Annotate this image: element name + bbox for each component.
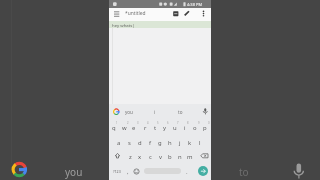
button[interactable]: y [160, 120, 170, 135]
staticText: 0 [208, 121, 210, 125]
staticText: a [117, 139, 121, 147]
button[interactable]: q [109, 120, 119, 135]
staticText: j [179, 139, 181, 147]
button[interactable]: k [185, 135, 195, 150]
staticText: x [138, 153, 142, 161]
staticText: z [129, 153, 132, 161]
staticText: 4:38 PM [187, 2, 203, 7]
button[interactable]: x [135, 149, 145, 164]
staticText: . [186, 168, 188, 176]
staticText: 1 [116, 121, 118, 125]
button[interactable]: c [145, 149, 155, 164]
button[interactable]: i [180, 120, 190, 135]
staticText: r [144, 124, 147, 132]
button[interactable]: s [124, 135, 134, 150]
button[interactable]: r [140, 120, 150, 135]
button[interactable] [198, 166, 208, 176]
staticText: , [127, 168, 129, 176]
staticText: you [125, 109, 133, 115]
staticText: o [193, 124, 197, 132]
staticText: 5 [157, 121, 159, 125]
staticText: k [188, 139, 192, 147]
button[interactable] [132, 164, 141, 179]
button[interactable]: to [170, 105, 190, 118]
button[interactable]: o [190, 120, 200, 135]
staticText: hey whats| [112, 22, 135, 28]
button[interactable]: f [145, 135, 155, 150]
button[interactable]: p [200, 120, 210, 135]
button[interactable]: n [175, 149, 185, 164]
button[interactable]: e [129, 120, 139, 135]
staticText: q [112, 124, 116, 132]
button[interactable]: u [170, 120, 180, 135]
staticText: ?123 [113, 169, 121, 174]
button[interactable]: you [119, 105, 139, 118]
button[interactable]: z [125, 149, 135, 164]
staticText: w [122, 124, 127, 132]
button[interactable]: w [119, 120, 129, 135]
button[interactable]: t [150, 120, 160, 135]
staticText: s [128, 139, 131, 147]
button[interactable]: b [165, 149, 175, 164]
staticText: i [184, 124, 186, 132]
button[interactable]: i [145, 105, 165, 118]
button[interactable]: . [182, 164, 191, 179]
staticText: e [132, 124, 136, 132]
button[interactable] [171, 9, 180, 20]
staticText: 3 [137, 121, 139, 125]
button[interactable]: , [123, 164, 132, 179]
button[interactable]: ?123 [111, 164, 123, 179]
staticText: p [203, 124, 207, 132]
staticText: l [199, 139, 201, 147]
staticText: 7 [177, 121, 179, 125]
button[interactable]: l [195, 135, 205, 150]
button[interactable] [111, 105, 122, 118]
staticText: 2 [127, 121, 129, 125]
staticText: m [187, 153, 193, 161]
staticText: 6 [167, 121, 169, 125]
staticText: *untitled [125, 10, 146, 17]
staticText: to [239, 165, 249, 179]
staticText: u [173, 124, 177, 132]
button[interactable]: m [185, 149, 195, 164]
button[interactable] [198, 149, 211, 164]
button[interactable]: v [155, 149, 165, 164]
staticText: 8 [187, 121, 189, 125]
button[interactable]: d [135, 135, 145, 150]
staticText: you [65, 165, 83, 179]
staticText: 4 [147, 121, 149, 125]
staticText: g [158, 139, 162, 147]
button[interactable] [111, 149, 124, 164]
staticText: y [163, 124, 167, 132]
button[interactable] [199, 9, 208, 20]
staticText: b [168, 153, 172, 161]
staticText: n [178, 153, 182, 161]
staticText: f [149, 139, 152, 147]
staticText: d [138, 139, 142, 147]
button[interactable]: j [175, 135, 185, 150]
button[interactable] [182, 9, 191, 20]
button[interactable] [200, 105, 210, 118]
staticText: 9 [198, 121, 200, 125]
staticText: v [159, 153, 162, 161]
staticText: to [178, 109, 183, 115]
button[interactable]: h [165, 135, 175, 150]
button[interactable] [111, 9, 121, 21]
button[interactable]: g [155, 135, 165, 150]
staticText: h [168, 139, 172, 147]
button[interactable]: to [231, 163, 257, 180]
staticText: c [149, 153, 152, 161]
staticText: i [154, 109, 156, 115]
button[interactable]: a [114, 135, 124, 150]
staticText: t [154, 124, 157, 132]
button[interactable]: you [60, 163, 88, 180]
